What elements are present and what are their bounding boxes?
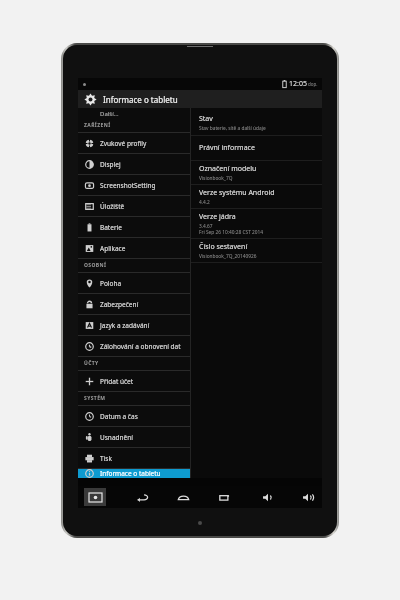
- staticText: Přidat účet: [100, 377, 134, 386]
- staticText: Verze jádra: [199, 212, 236, 222]
- staticText: Číslo sestavení: [199, 242, 248, 252]
- button[interactable]: Settings: [78, 90, 322, 108]
- button[interactable]: Právní informace: [191, 136, 322, 160]
- button[interactable]: Home: [173, 487, 193, 507]
- button[interactable]: Verze jádra: [191, 209, 322, 238]
- button[interactable]: Přidat účet: [78, 371, 190, 391]
- button[interactable]: Informace o tabletu: [78, 469, 190, 478]
- staticText: ZAŘÍZENÍ: [84, 122, 111, 129]
- staticText: Právní informace: [199, 143, 255, 153]
- button[interactable]: Displej: [78, 154, 190, 174]
- staticText: ScreenshotSetting: [100, 181, 156, 190]
- button[interactable]: Další...: [78, 108, 190, 119]
- staticText: Další...: [100, 110, 119, 118]
- staticText: Zálohování a obnovení dat: [100, 342, 181, 351]
- button[interactable]: Verze systému Android: [191, 185, 322, 208]
- button[interactable]: Úložiště: [78, 196, 190, 216]
- staticText: Zvukové profily: [100, 139, 147, 148]
- staticText: 3.4.67 Fri Sep 26 10:40:28 CST 2014: [199, 223, 264, 235]
- button[interactable]: Aplikace: [78, 238, 190, 258]
- staticText: Úložiště: [100, 202, 125, 211]
- other: Settings: [84, 93, 97, 106]
- staticText: 12:05: [289, 79, 307, 89]
- button[interactable]: Usnadnění: [78, 427, 190, 447]
- staticText: Verze systému Android: [199, 188, 275, 198]
- staticText: Označení modelu: [199, 164, 257, 174]
- staticText: Jazyk a zadávání: [100, 321, 150, 330]
- button[interactable]: ScreenshotSetting: [78, 175, 190, 195]
- staticText: Tisk: [100, 454, 112, 463]
- button[interactable]: Volume down: [258, 487, 278, 507]
- staticText: Stav baterie, sítě a další údaje: [199, 125, 266, 132]
- button[interactable]: Zabezpečení: [78, 294, 190, 314]
- button[interactable]: Stav: [191, 111, 322, 135]
- staticText: dop.: [308, 81, 318, 87]
- staticText: Informace o tabletu: [100, 469, 161, 478]
- staticText: Displej: [100, 160, 121, 169]
- button[interactable]: Zálohování a obnovení dat: [78, 336, 190, 356]
- button[interactable]: Poloha: [78, 273, 190, 293]
- button[interactable]: Back: [132, 487, 152, 507]
- button[interactable]: Screenshot: [84, 488, 106, 506]
- button[interactable]: Datum a čas: [78, 406, 190, 426]
- staticText: Visionbook_7Q: [199, 175, 233, 182]
- staticText: SYSTÉM: [84, 395, 106, 402]
- staticText: 4.4.2: [199, 199, 210, 206]
- button[interactable]: Volume up: [298, 487, 318, 507]
- button[interactable]: Zvukové profily: [78, 133, 190, 153]
- staticText: Baterie: [100, 223, 122, 232]
- staticText: Stav: [199, 114, 213, 124]
- button[interactable]: Baterie: [78, 217, 190, 237]
- button[interactable]: Označení modelu: [191, 161, 322, 184]
- staticText: Datum a čas: [100, 412, 138, 421]
- button[interactable]: Číslo sestavení: [191, 239, 322, 262]
- staticText: OSOBNÍ: [84, 262, 107, 269]
- staticText: Aplikace: [100, 244, 126, 253]
- button[interactable]: Recents: [214, 487, 234, 507]
- staticText: Usnadnění: [100, 433, 133, 442]
- button[interactable]: Tisk: [78, 448, 190, 468]
- staticText: Informace o tabletu: [103, 94, 178, 105]
- staticText: Poloha: [100, 279, 122, 288]
- staticText: Zabezpečení: [100, 300, 139, 309]
- staticText: Visionbook_7Q_20140926: [199, 253, 257, 260]
- button[interactable]: Jazyk a zadávání: [78, 315, 190, 335]
- staticText: ÚČTY: [84, 360, 99, 367]
